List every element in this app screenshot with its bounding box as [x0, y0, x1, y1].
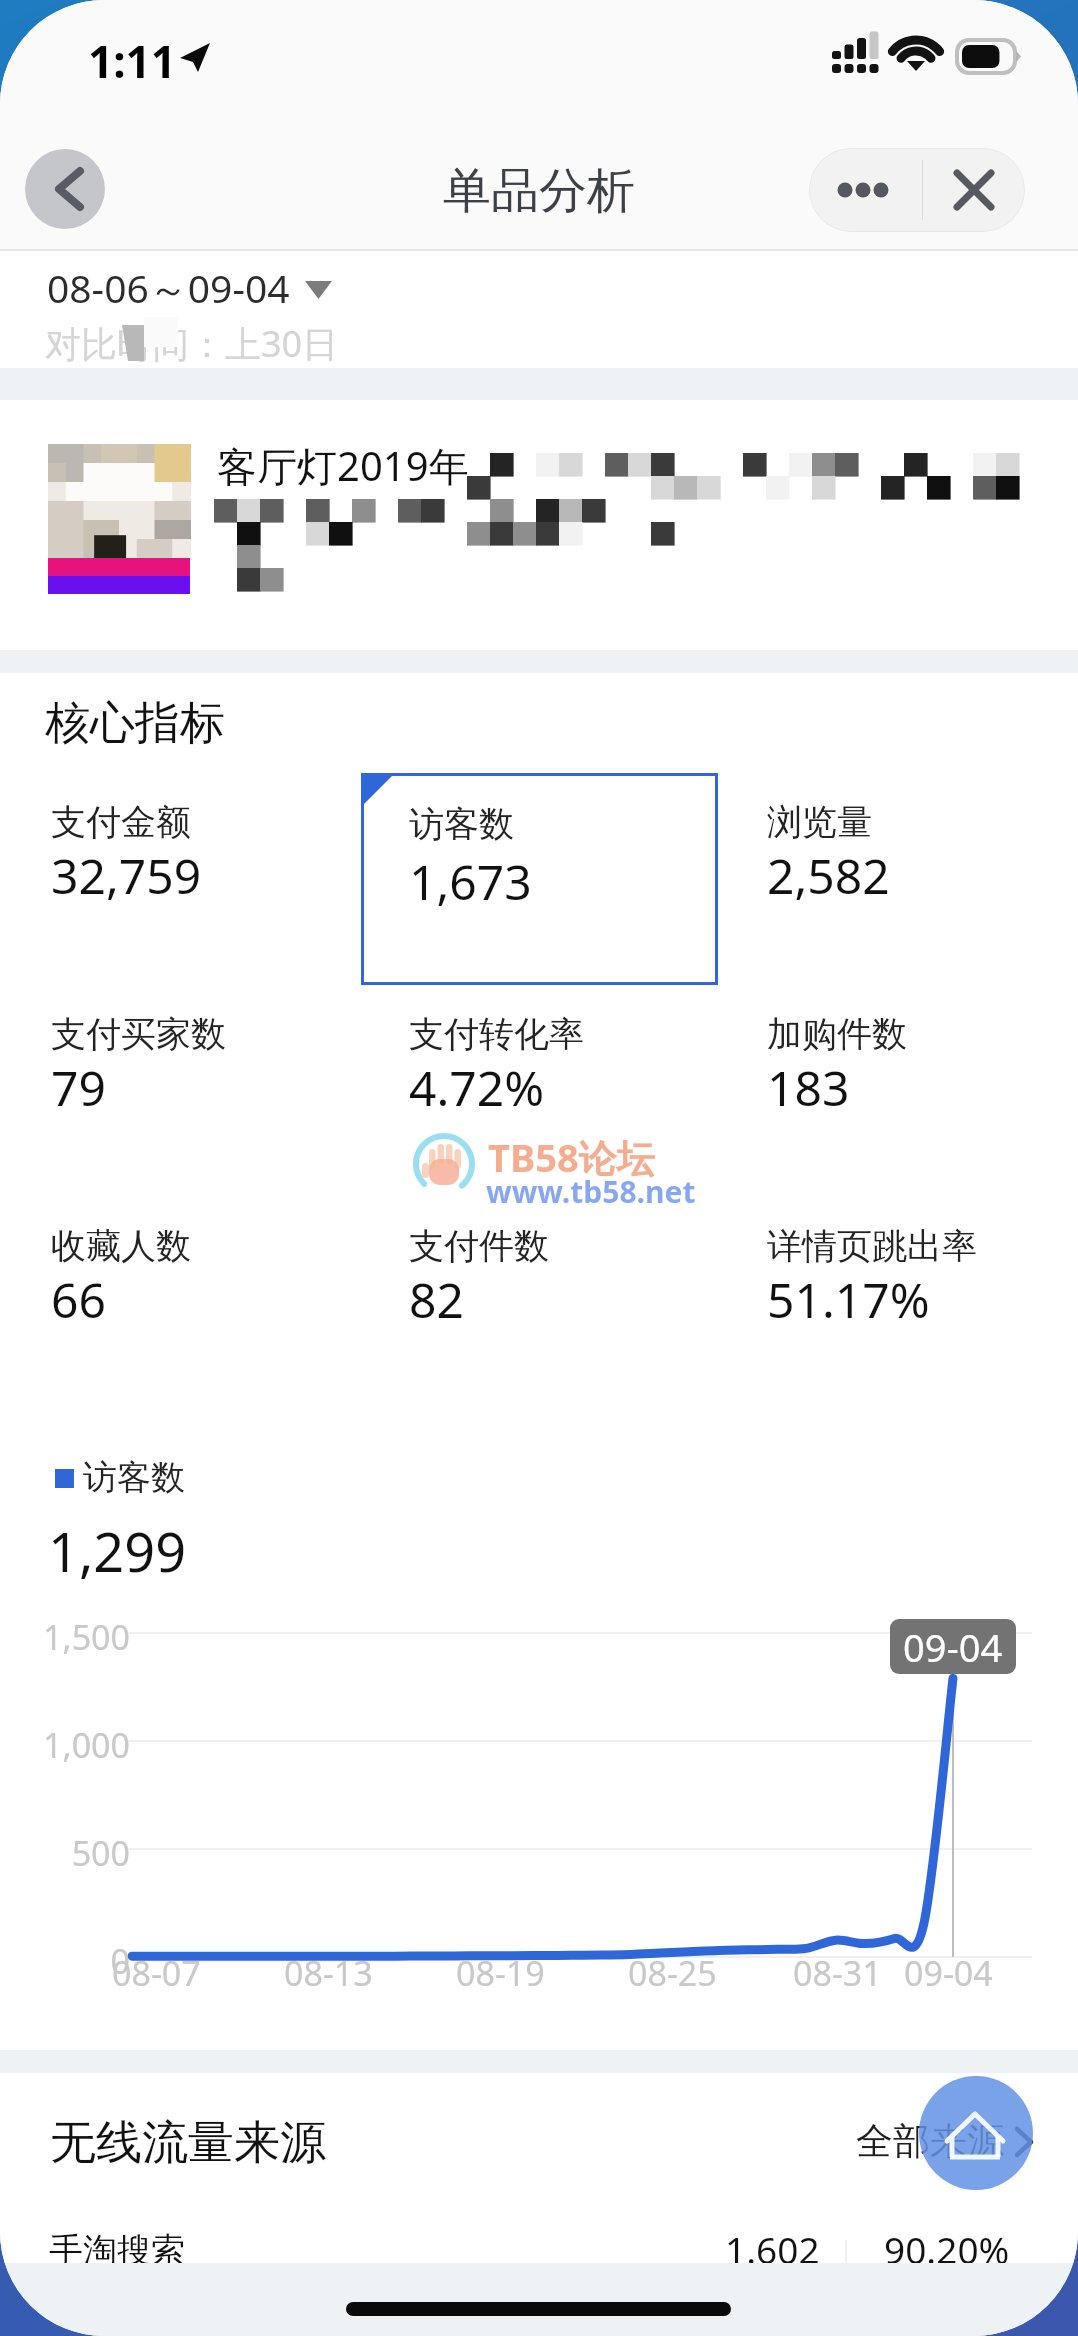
button[interactable]: 浏览量 [767, 800, 1078, 930]
staticText: 82 [409, 1267, 464, 1332]
staticText: 0 [20, 1938, 130, 1984]
button[interactable]: Close [923, 148, 1025, 232]
staticText: 4.72% [409, 1055, 545, 1120]
staticText: 08-06～09-04 [47, 261, 290, 314]
button[interactable]: 收藏人数 [51, 1224, 381, 1354]
staticText: 32,759 [51, 843, 202, 908]
staticText: 51.17% [767, 1267, 930, 1332]
button[interactable]: 详情页跳出率 [767, 1224, 1078, 1354]
staticText: 单品分析 [443, 161, 635, 221]
button[interactable]: 全部来源 [856, 2118, 1035, 2165]
staticText: 08-07 [112, 1950, 201, 1996]
staticText: 66 [51, 1267, 106, 1332]
button[interactable]: Back [25, 149, 105, 229]
staticText: 08-31 [793, 1950, 882, 1996]
staticText: 09-04 [903, 1621, 1003, 1673]
button[interactable]: 支付金额 [51, 800, 381, 930]
staticText: 08-13 [284, 1950, 373, 1996]
staticText: 1,299 [48, 1514, 187, 1588]
staticText: 1,500 [20, 1614, 130, 1660]
staticText: 手淘搜索 [49, 2229, 185, 2272]
staticText: 2,582 [767, 843, 890, 908]
staticText: 183 [767, 1055, 850, 1120]
staticText: 1,000 [20, 1722, 130, 1768]
button[interactable]: 支付买家数 [51, 1012, 381, 1142]
staticText: 核心指标 [45, 695, 225, 752]
button[interactable]: More options [809, 148, 922, 232]
button[interactable]: 支付件数 [409, 1224, 739, 1354]
staticText: 客厅灯2019年 [217, 438, 469, 493]
staticText: 1.602 [725, 2224, 820, 2274]
staticText: 1,673 [409, 849, 532, 914]
button[interactable]: 08-06～09-04 [47, 261, 332, 314]
staticText: 访客数 [409, 802, 514, 846]
staticText: 79 [51, 1055, 106, 1120]
staticText: www.tb58.net [486, 1171, 696, 1212]
staticText: 1:11 [88, 31, 176, 91]
button[interactable]: 支付转化率 [409, 1012, 739, 1142]
staticText: 09-04 [904, 1950, 993, 1996]
staticText: 支付买家数 [51, 1012, 226, 1056]
staticText: 详情页跳出率 [767, 1224, 977, 1268]
staticText: 08-25 [628, 1950, 717, 1996]
button[interactable]: 客厅灯2019年 [0, 400, 1078, 650]
staticText: 对比时间：上30日 [45, 319, 339, 368]
staticText: 支付转化率 [409, 1012, 584, 1056]
staticText: TB58论坛 [488, 1131, 655, 1183]
staticText: 收藏人数 [51, 1224, 191, 1268]
staticText: 访客数 [83, 1456, 185, 1499]
staticText: 08-19 [456, 1950, 545, 1996]
button[interactable]: Back to top [919, 2076, 1033, 2190]
staticText: 加购件数 [767, 1012, 907, 1056]
staticText: 支付件数 [409, 1224, 549, 1268]
staticText: 90.20% [884, 2224, 1010, 2274]
staticText: 500 [20, 1830, 130, 1876]
staticText: 浏览量 [767, 800, 872, 844]
button[interactable]: 加购件数 [767, 1012, 1078, 1142]
staticText: 无线流量来源 [50, 2114, 326, 2172]
staticText: 全部来源 [856, 2118, 1004, 2165]
staticText: 支付金额 [51, 800, 191, 844]
button[interactable]: 访客数 [361, 773, 718, 985]
